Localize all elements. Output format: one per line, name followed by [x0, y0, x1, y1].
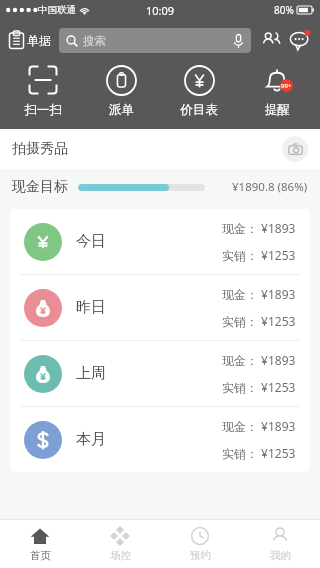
- staticText: 实销： ¥1253: [222, 247, 296, 263]
- staticText: 我的: [270, 549, 291, 562]
- staticText: 80%: [274, 3, 294, 17]
- staticText: 搜索: [83, 34, 106, 48]
- button[interactable]: 派单: [86, 61, 156, 120]
- button[interactable]: 场控: [80, 520, 160, 568]
- button[interactable]: 搜索: [59, 28, 251, 53]
- staticText: 实销： ¥1253: [222, 379, 296, 395]
- staticText: 现金： ¥1893: [222, 286, 296, 302]
- button[interactable]: 99+: [242, 61, 312, 120]
- staticText: 价目表: [180, 102, 218, 118]
- staticText: 现金： ¥1893: [222, 220, 296, 236]
- staticText: 中国联通: [38, 4, 76, 16]
- staticText: 提醒: [265, 102, 290, 118]
- staticText: 现金： ¥1893: [222, 352, 296, 368]
- staticText: 昨日: [76, 298, 106, 317]
- staticText: 预约: [190, 549, 211, 562]
- staticText: 场控: [110, 549, 131, 562]
- staticText: 10:09: [146, 3, 175, 18]
- button[interactable]: 今日: [10, 209, 310, 274]
- other: Camera: [282, 136, 308, 162]
- staticText: 单据: [27, 33, 51, 48]
- button[interactable]: 扫一扫: [8, 61, 78, 120]
- button[interactable]: 我的: [240, 520, 320, 568]
- button[interactable]: Contacts: [258, 27, 284, 53]
- staticText: 上周: [76, 364, 106, 383]
- staticText: 扫一扫: [24, 102, 62, 118]
- staticText: 今日: [76, 232, 106, 251]
- button[interactable]: 价目表: [164, 61, 234, 120]
- button[interactable]: 拍摄秀品: [0, 129, 320, 169]
- button[interactable]: Messages: [287, 27, 313, 53]
- button[interactable]: 本月: [10, 407, 310, 472]
- staticText: 派单: [109, 102, 134, 118]
- staticText: 拍摄秀品: [12, 140, 68, 158]
- staticText: ¥1890.8 (86%): [232, 179, 308, 195]
- staticText: 现金目标: [12, 178, 68, 196]
- staticText: 99+: [281, 82, 292, 90]
- button[interactable]: 上周: [10, 341, 310, 406]
- staticText: 实销： ¥1253: [222, 313, 296, 329]
- button[interactable]: 首页: [0, 520, 80, 568]
- staticText: 本月: [76, 430, 106, 449]
- staticText: 实销： ¥1253: [222, 445, 296, 461]
- staticText: 首页: [30, 549, 51, 562]
- button[interactable]: 单据: [7, 29, 53, 51]
- button[interactable]: 昨日: [10, 275, 310, 340]
- staticText: 现金： ¥1893: [222, 418, 296, 434]
- button[interactable]: 预约: [160, 520, 240, 568]
